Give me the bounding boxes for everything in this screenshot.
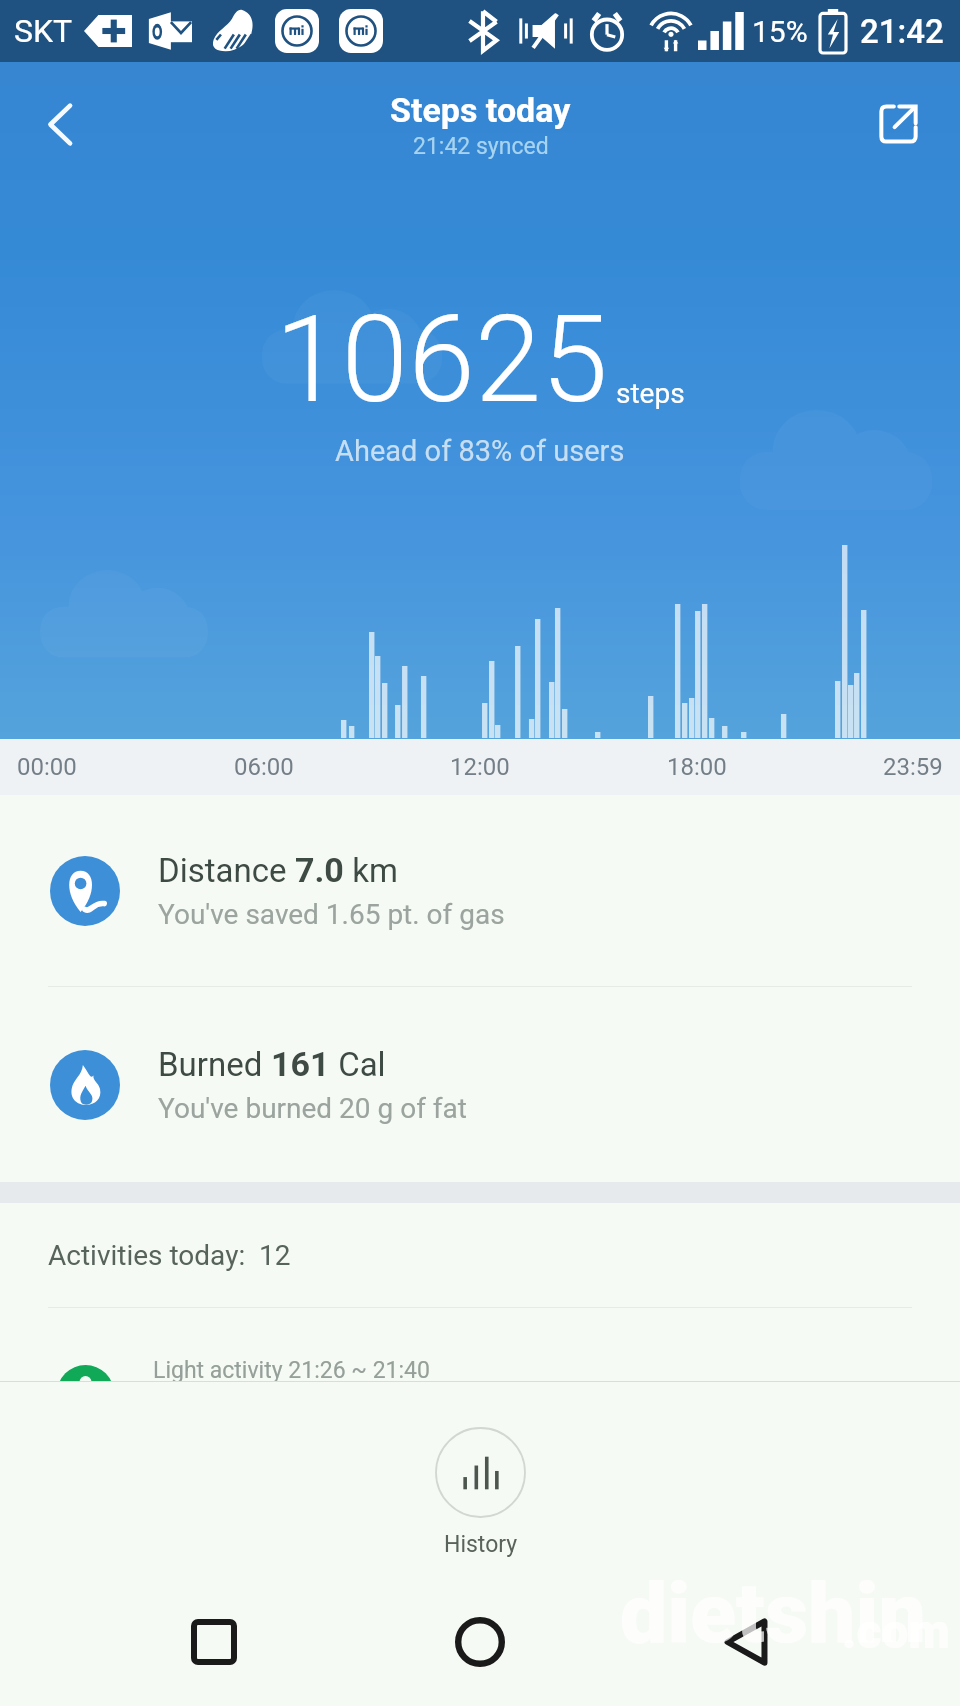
staticText: dietshin — [620, 1564, 926, 1662]
staticText: Distance — [158, 851, 295, 890]
staticText: 12:00 — [450, 753, 510, 781]
staticText: Burned — [158, 1045, 271, 1084]
staticText: 18:00 — [667, 753, 727, 781]
staticText: 21:42 synced — [413, 133, 549, 160]
button[interactable]: Share — [879, 104, 918, 144]
staticText: You've burned 20 g of fat — [158, 1092, 467, 1125]
staticText: Steps today — [390, 90, 571, 130]
staticText: History — [444, 1531, 518, 1558]
staticText: 23:59 — [883, 753, 943, 781]
staticText: Ahead of 83% of users — [335, 434, 625, 468]
staticText: steps — [616, 377, 685, 410]
staticText: 21:42 — [860, 12, 944, 51]
button[interactable]: Burned — [0, 987, 960, 1182]
staticText: Light activity 21:26 ~ 21:40 — [153, 1357, 430, 1384]
staticText: You've saved 1.65 pt. of gas — [158, 898, 505, 931]
staticText: 00:00 — [17, 753, 77, 781]
staticText: 15% — [752, 14, 808, 49]
staticText: km — [344, 851, 398, 890]
staticText: Activities today: 12 — [48, 1239, 291, 1272]
button[interactable]: Distance — [0, 795, 960, 986]
staticText: .com — [842, 1603, 950, 1659]
button[interactable]: Recents — [81, 1578, 347, 1706]
staticText: Cal — [330, 1045, 386, 1084]
staticText: 10625 — [275, 290, 608, 431]
staticText: 7.0 — [295, 850, 344, 890]
button[interactable]: Home — [347, 1578, 613, 1706]
staticText: SKT — [14, 12, 73, 50]
button[interactable]: History — [435, 1427, 526, 1558]
button[interactable]: Back — [48, 103, 72, 146]
staticText: 06:00 — [234, 753, 294, 781]
staticText: 161 — [271, 1044, 330, 1084]
button[interactable]: Back — [613, 1578, 879, 1706]
